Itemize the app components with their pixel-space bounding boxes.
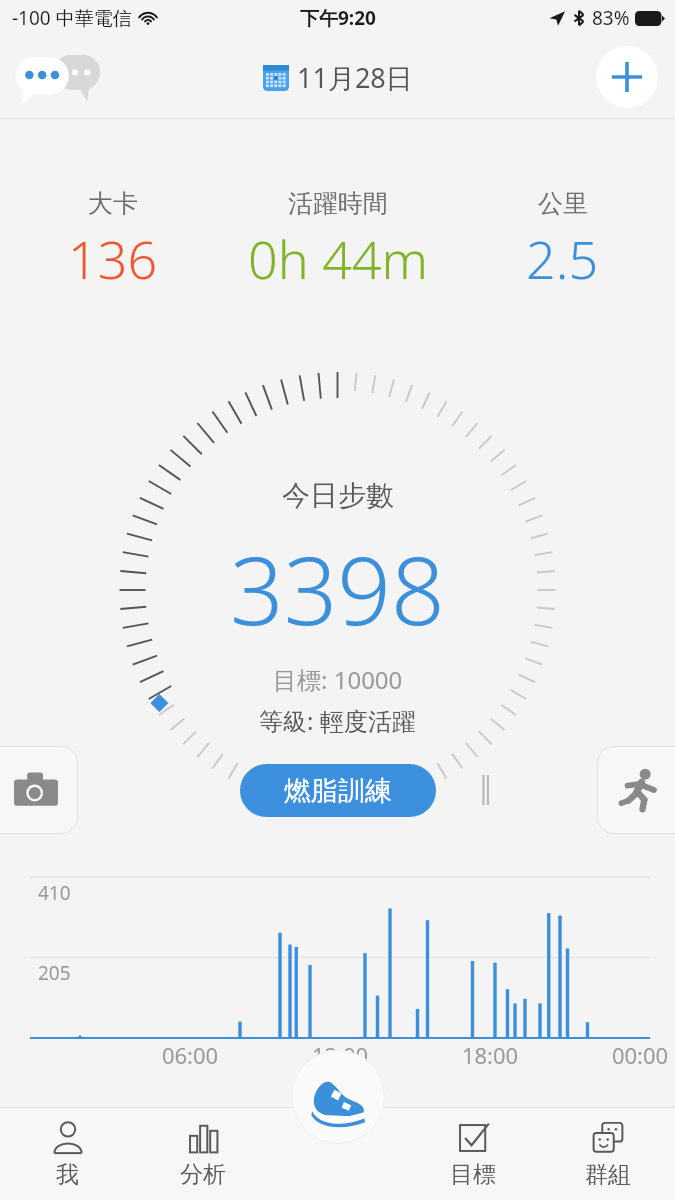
- staticText: 410: [38, 880, 71, 906]
- button[interactable]: 群組: [540, 1108, 675, 1200]
- staticText: 下午9:20: [300, 5, 376, 31]
- button[interactable]: Steps: [291, 1050, 385, 1144]
- staticText: 2.5: [526, 223, 599, 294]
- button[interactable]: Start run: [597, 746, 675, 834]
- button[interactable]: Messages: [12, 48, 112, 106]
- staticText: 活躍時間: [288, 188, 388, 219]
- staticText: 燃脂訓練: [284, 774, 392, 808]
- button[interactable]: 分析: [135, 1108, 270, 1200]
- staticText: 大卡: [88, 188, 138, 219]
- staticText: 目標: 10000: [273, 663, 403, 696]
- staticText: 我: [56, 1160, 79, 1189]
- staticText: 3398: [230, 525, 445, 653]
- staticText: 0h 44m: [248, 223, 428, 294]
- button[interactable]: 11月28日: [255, 53, 421, 102]
- button[interactable]: 大卡: [0, 186, 225, 296]
- staticText: 12:00: [302, 1040, 378, 1070]
- button[interactable]: 410: [0, 862, 675, 1062]
- staticText: 06:00: [152, 1040, 228, 1070]
- staticText: 11月28日: [297, 59, 413, 96]
- button[interactable]: 活躍時間: [225, 186, 450, 296]
- button[interactable]: 今日步數: [0, 368, 675, 768]
- staticText: 等級: 輕度活躍: [259, 704, 416, 737]
- staticText: 今日步數: [282, 478, 394, 513]
- staticText: 18:00: [452, 1040, 528, 1070]
- staticText: 205: [38, 960, 71, 986]
- button[interactable]: Camera: [0, 746, 78, 834]
- button[interactable]: 燃脂訓練: [240, 764, 436, 817]
- staticText: 136: [68, 223, 158, 294]
- staticText: 83%: [592, 5, 630, 31]
- staticText: 目標: [450, 1160, 496, 1189]
- button[interactable]: Add: [596, 46, 658, 108]
- staticText: 公里: [538, 188, 588, 219]
- staticText: 分析: [180, 1160, 226, 1189]
- staticText: 00:00: [602, 1040, 675, 1070]
- button[interactable]: 目標: [405, 1108, 540, 1200]
- staticText: 群組: [585, 1160, 631, 1189]
- staticText: -100 中華電信: [12, 5, 132, 31]
- button[interactable]: 我: [0, 1108, 135, 1200]
- button[interactable]: 公里: [450, 186, 675, 296]
